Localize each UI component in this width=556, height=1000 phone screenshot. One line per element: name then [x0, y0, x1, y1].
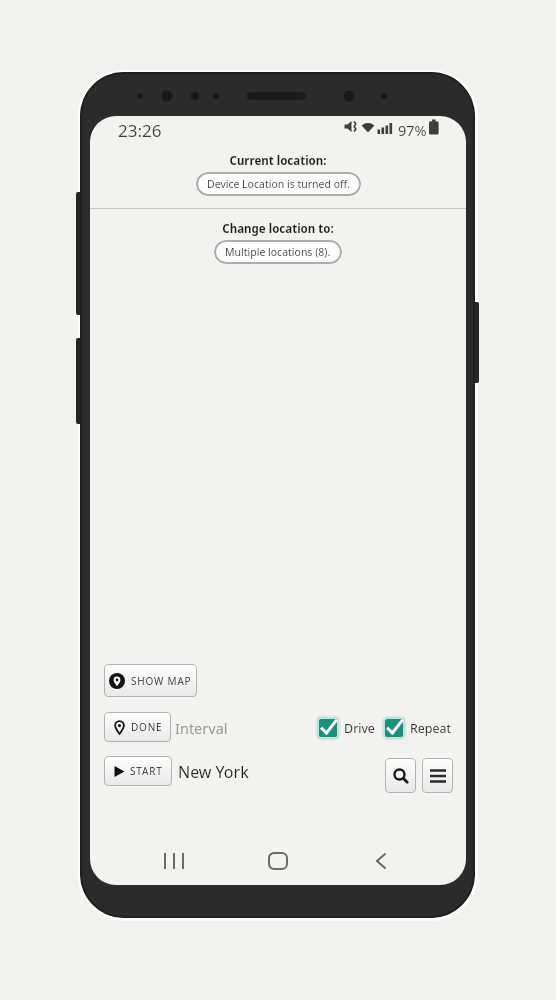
- button[interactable]: Multiple locations (8).: [214, 240, 342, 264]
- staticText: Current location:: [90, 153, 466, 169]
- button[interactable]: Device Location is turned off.: [196, 172, 361, 196]
- button[interactable]: Repeat: [385, 719, 452, 737]
- staticText: Interval: [175, 718, 228, 738]
- staticText: START: [130, 764, 163, 778]
- button[interactable]: Drive: [319, 719, 375, 737]
- staticText: 23:26: [118, 119, 162, 142]
- button[interactable]: [422, 758, 453, 793]
- button[interactable]: [385, 758, 416, 793]
- button[interactable]: DONE: [104, 712, 171, 742]
- staticText: New York: [178, 761, 249, 783]
- staticText: SHOW MAP: [131, 674, 192, 688]
- button[interactable]: [268, 852, 288, 870]
- staticText: Change location to:: [90, 221, 466, 237]
- staticText: Repeat: [410, 720, 452, 737]
- staticText: Drive: [344, 720, 375, 737]
- button[interactable]: SHOW MAP: [104, 664, 197, 697]
- button[interactable]: START: [104, 756, 172, 786]
- staticText: 97%: [398, 120, 427, 140]
- staticText: Multiple locations (8).: [225, 245, 331, 259]
- staticText: Device Location is turned off.: [207, 177, 350, 191]
- staticText: DONE: [131, 720, 163, 734]
